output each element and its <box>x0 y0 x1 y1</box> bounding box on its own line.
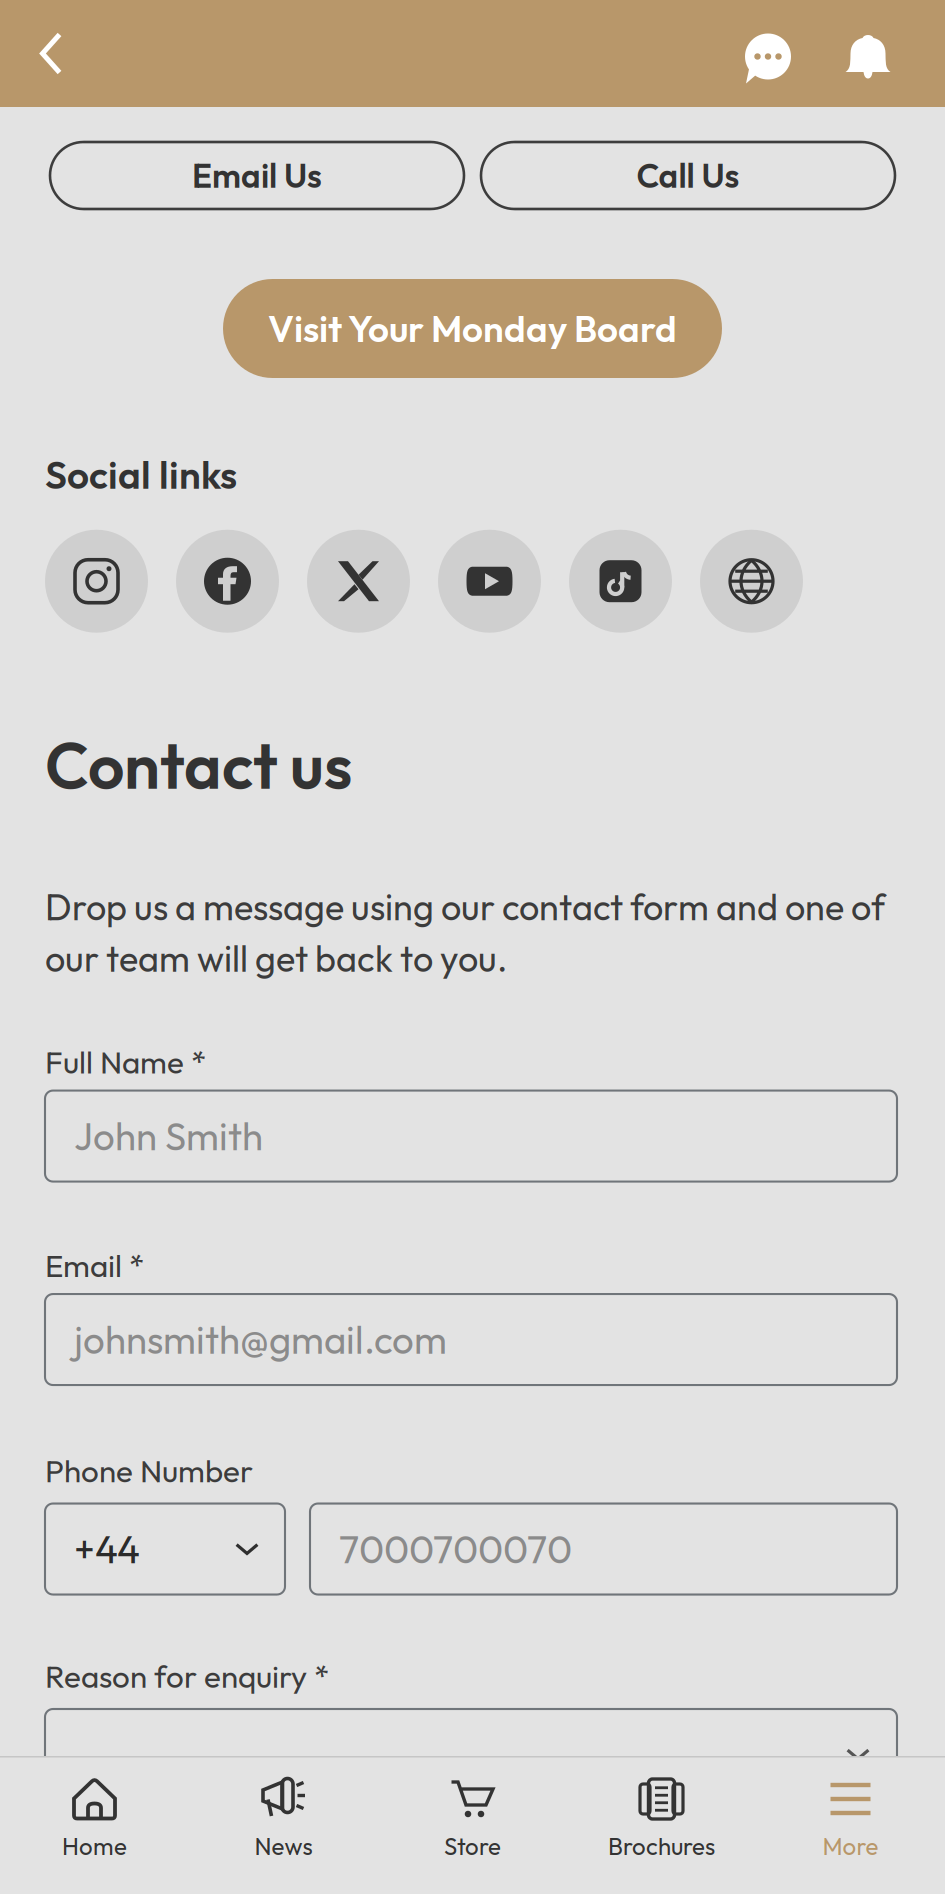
button[interactable]: Visit Your Monday Board <box>223 279 722 378</box>
staticText: Brochures <box>608 1831 715 1861</box>
button[interactable]: Email Us <box>50 142 464 209</box>
button[interactable]: Brochures <box>567 1756 756 1894</box>
staticText: Social links <box>45 450 237 499</box>
button[interactable]: Call Us <box>481 142 895 209</box>
staticText: Phone Number <box>45 1451 253 1490</box>
staticText: Call Us <box>636 154 739 196</box>
staticText: Email * <box>45 1246 144 1285</box>
staticText: Email Us <box>192 154 322 196</box>
button[interactable]: Store <box>378 1756 567 1894</box>
button[interactable]: News <box>189 1756 378 1894</box>
staticText: johnsmith@gmail.com <box>74 1315 447 1364</box>
staticText: More <box>822 1831 878 1861</box>
staticText: our team will get back to you. <box>45 936 507 981</box>
staticText: John Smith <box>74 1112 263 1160</box>
staticText: Drop us a message using our contact form… <box>45 884 885 930</box>
button[interactable]: Notifications <box>818 0 918 107</box>
staticText: +44 <box>74 1525 140 1573</box>
staticText: Full Name * <box>45 1042 206 1082</box>
button[interactable]: Facebook <box>176 530 279 633</box>
button[interactable]: X <box>307 530 410 633</box>
button[interactable]: Instagram <box>45 530 148 633</box>
button[interactable]: More <box>756 1756 945 1894</box>
button[interactable]: Messages <box>718 0 818 107</box>
button[interactable]: YouTube <box>438 530 541 633</box>
staticText: News <box>254 1831 312 1861</box>
button[interactable]: Website <box>700 530 803 633</box>
staticText: Contact us <box>45 725 352 805</box>
staticText: Home <box>62 1831 127 1861</box>
staticText: Reason for enquiry * <box>45 1656 329 1696</box>
button[interactable]: Home <box>0 1756 189 1894</box>
staticText: 7000700070 <box>339 1525 572 1573</box>
staticText: Visit Your Monday Board <box>268 305 677 352</box>
staticText: Store <box>444 1831 501 1861</box>
button[interactable]: Back <box>0 0 102 107</box>
button[interactable]: TikTok <box>569 530 672 633</box>
